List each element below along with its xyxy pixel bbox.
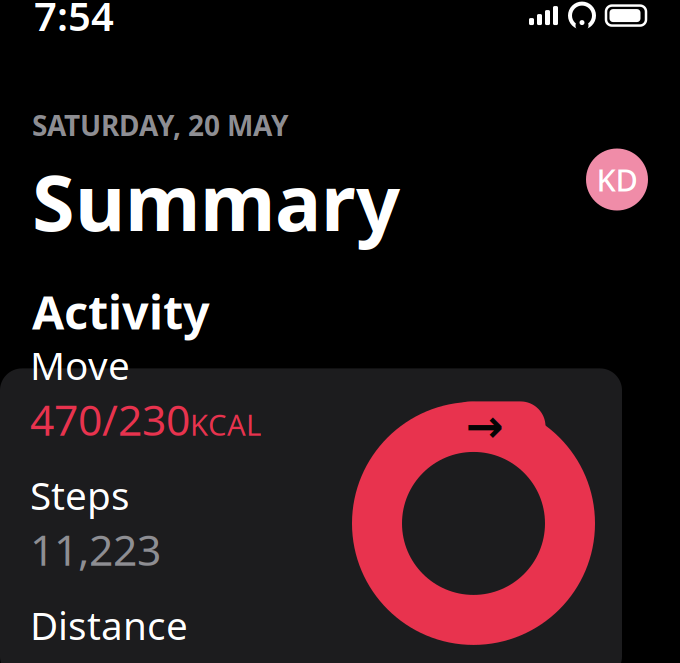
- button[interactable]: Profile: [586, 148, 648, 210]
- staticText: KD: [596, 159, 637, 200]
- staticText: 11,223: [30, 521, 161, 577]
- staticText: Steps: [30, 469, 130, 521]
- staticText: Distance: [30, 599, 188, 651]
- button[interactable]: Move: [0, 368, 622, 663]
- staticText: 7:54: [34, 0, 114, 42]
- staticText: →: [465, 401, 503, 452]
- staticText: Activity: [32, 280, 210, 342]
- staticText: Move: [30, 339, 130, 391]
- staticText: 470/230: [30, 391, 190, 447]
- staticText: KCAL: [190, 405, 261, 444]
- staticText: Summary: [32, 150, 400, 252]
- staticText: SATURDAY, 20 MAY: [32, 107, 289, 144]
